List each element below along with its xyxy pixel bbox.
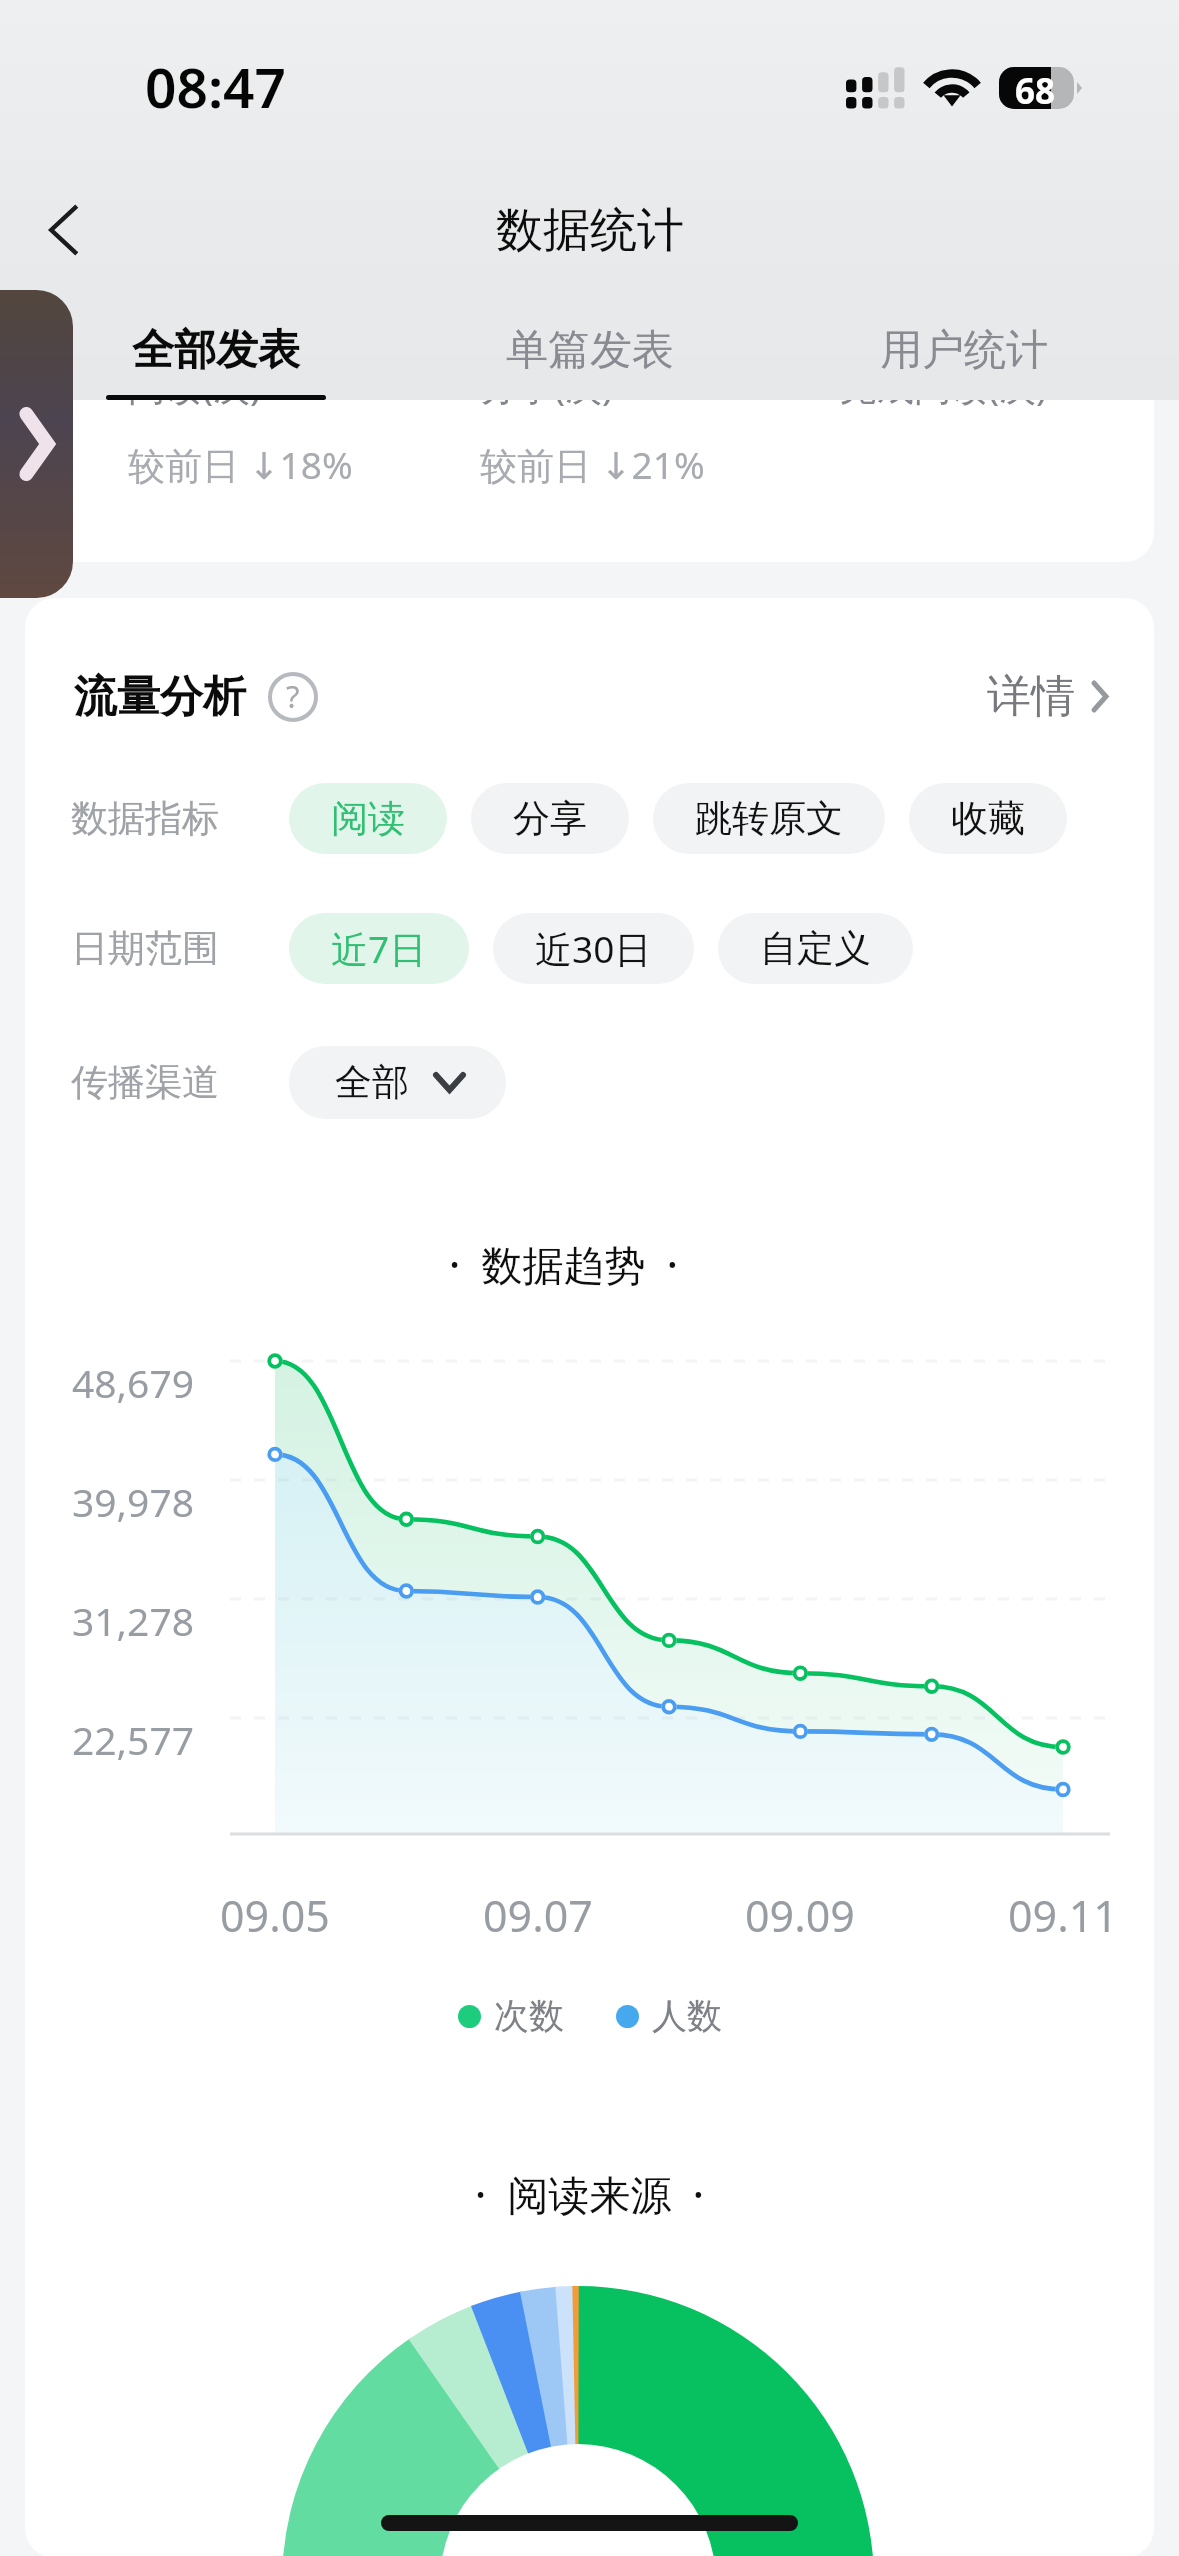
button[interactable]: Help (268, 672, 318, 722)
button[interactable]: 全部发表 (28, 290, 403, 400)
staticText: 阅读 (331, 795, 405, 842)
staticText: 68 (1015, 67, 1056, 109)
staticText: 39,978 (72, 1475, 194, 1527)
staticText: 阅读(次) (128, 360, 262, 411)
staticText: 近30日 (535, 923, 652, 974)
button[interactable]: 自定义 (718, 913, 913, 984)
staticText: 近7日 (331, 923, 427, 974)
button[interactable]: Back (12, 178, 116, 282)
button[interactable]: 全部 (289, 1046, 506, 1119)
staticText: ? (286, 675, 300, 717)
staticText: 较前日 ↓21% (480, 439, 705, 490)
button[interactable]: 近30日 (493, 913, 694, 984)
staticText: 08:47 (145, 49, 287, 124)
button[interactable]: 单篇发表 (403, 290, 777, 400)
staticText: 单篇发表 (506, 324, 674, 377)
button[interactable]: 用户统计 (777, 290, 1151, 400)
staticText: 自定义 (760, 925, 871, 972)
button[interactable]: 近7日 (289, 913, 469, 984)
staticText: 数据统计 (496, 201, 684, 260)
staticText: 22,577 (72, 1713, 194, 1765)
staticText: 日期范围 (71, 925, 219, 972)
staticText: 分享 (513, 795, 587, 842)
staticText: 全部 (335, 1059, 409, 1106)
button[interactable]: 收藏 (909, 783, 1067, 854)
staticText: 09.05 (220, 1886, 330, 1945)
button[interactable]: 分享 (471, 783, 629, 854)
staticText: 分享(次) (480, 360, 614, 411)
staticText: 48,679 (72, 1356, 194, 1408)
staticText: 次数 (494, 1994, 564, 2038)
staticText: 人数 (652, 1994, 722, 2038)
staticText: 详情 (987, 669, 1075, 724)
button[interactable]: 跳转原文 (653, 783, 885, 854)
staticText: 31,278 (72, 1594, 194, 1646)
staticText: 完成阅读(次) (840, 360, 1048, 411)
staticText: 全部发表 (132, 324, 300, 377)
staticText: 跳转原文 (695, 795, 843, 842)
staticText: · 数据趋势 · (25, 1236, 1128, 1292)
staticText: 09.09 (745, 1886, 855, 1945)
staticText: 传播渠道 (71, 1059, 219, 1106)
button[interactable]: 详情 (987, 669, 1110, 724)
staticText: · 阅读来源 · (25, 2166, 1154, 2222)
staticText: 数据指标 (71, 795, 219, 842)
staticText: 流量分析 (74, 670, 246, 724)
button[interactable]: Expand panel (0, 290, 73, 598)
staticText: 较前日 ↓18% (128, 439, 353, 490)
staticText: 收藏 (951, 795, 1025, 842)
staticText: 09.11 (1008, 1886, 1118, 1945)
staticText: 用户统计 (880, 324, 1048, 377)
staticText: 09.07 (483, 1886, 593, 1945)
button[interactable]: 阅读 (289, 783, 447, 854)
